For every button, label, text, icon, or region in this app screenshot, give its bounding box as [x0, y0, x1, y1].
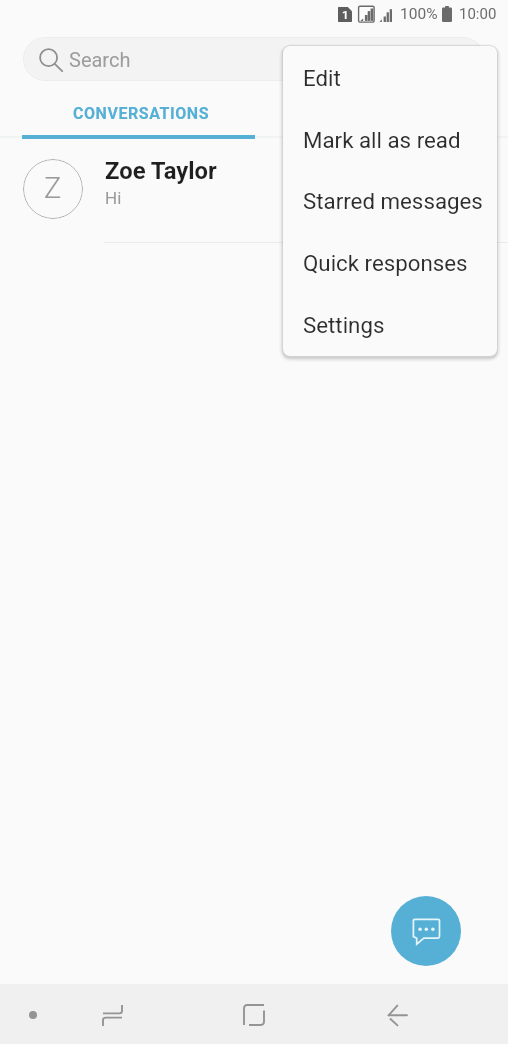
button[interactable]: Search [23, 37, 485, 81]
staticText: Search [69, 48, 131, 71]
staticText: Mark all as read [303, 127, 461, 153]
button[interactable]: Quick responses [283, 232, 497, 294]
staticText: 1 [342, 8, 349, 21]
staticText: Zoe Taylor [105, 157, 217, 185]
staticText: Quick responses [303, 250, 468, 276]
button[interactable]: Recent apps [88, 991, 136, 1039]
button[interactable]: Back [373, 991, 421, 1039]
staticText: Z [44, 171, 62, 205]
button[interactable]: New conversation [391, 896, 461, 966]
staticText: Starred messages [303, 188, 483, 214]
button[interactable]: CONVERSATIONS [22, 93, 255, 139]
staticText: Hi [105, 188, 122, 208]
button[interactable]: Settings [283, 294, 497, 356]
button[interactable]: Hide keyboard [12, 994, 54, 1036]
button[interactable]: Starred messages [283, 170, 497, 232]
button[interactable]: Mark all as read [283, 109, 497, 171]
staticText: CONVERSATIONS [73, 104, 210, 123]
staticText: 100% [400, 5, 438, 23]
staticText: Edit [303, 65, 341, 91]
button[interactable]: Home [230, 991, 278, 1039]
button[interactable]: Edit [283, 47, 497, 109]
staticText: Settings [303, 312, 385, 338]
staticText: 10:00 [459, 5, 497, 23]
button[interactable]: Z [0, 142, 508, 243]
